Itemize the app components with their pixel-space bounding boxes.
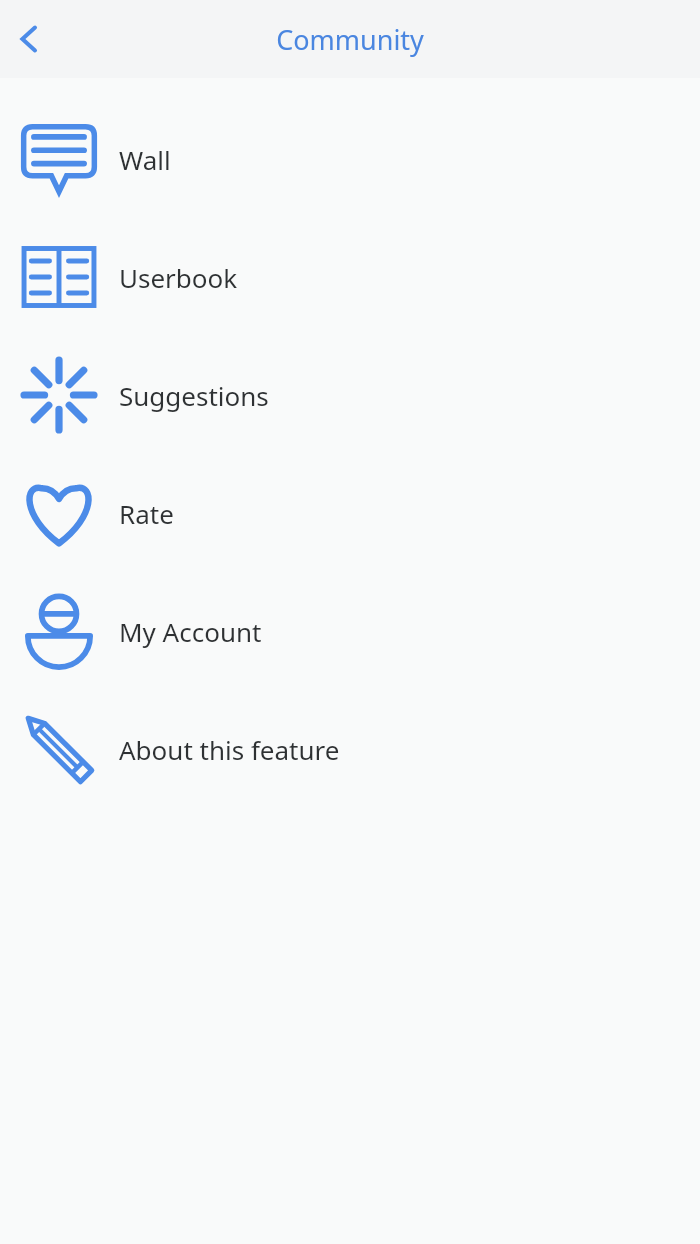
staticText: Rate [119,496,174,531]
button[interactable]: Suggestions [0,336,700,454]
button[interactable]: Userbook [0,218,700,336]
button[interactable]: Rate [0,454,700,572]
button[interactable]: Wall [0,100,700,218]
staticText: Suggestions [119,378,269,413]
staticText: Userbook [119,260,238,295]
staticText: My Account [119,614,262,649]
staticText: About this feature [119,732,340,767]
staticText: Wall [119,142,171,177]
button[interactable]: My Account [0,572,700,690]
button[interactable]: About this feature [0,690,700,808]
staticText: Community [276,21,424,58]
button[interactable]: Back [0,10,58,68]
